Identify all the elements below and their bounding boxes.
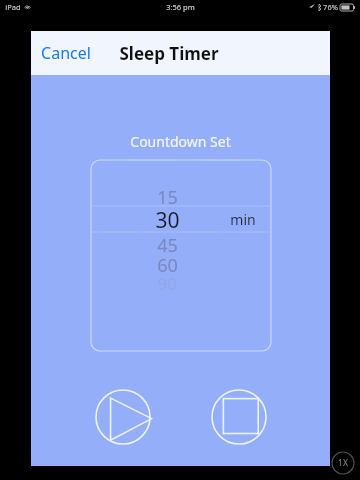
staticText: 15 xyxy=(157,185,178,210)
staticText: 1X xyxy=(338,457,348,469)
staticText: 76% xyxy=(323,2,338,12)
button[interactable]: Stop xyxy=(209,387,269,447)
staticText: iPad xyxy=(5,2,21,12)
staticText: 60 xyxy=(157,253,178,278)
staticText: 3:56 pm xyxy=(166,2,195,12)
staticText: 30 xyxy=(155,206,180,235)
button[interactable]: Play xyxy=(93,387,153,447)
button[interactable]: Cancel xyxy=(31,36,101,70)
staticText: min xyxy=(230,210,256,229)
button[interactable]: Scale 1X xyxy=(331,451,355,475)
staticText: Countdown Set xyxy=(130,132,231,151)
staticText: 45 xyxy=(157,233,178,258)
staticText: Cancel xyxy=(41,42,91,64)
staticText: 90 xyxy=(157,272,177,295)
staticText: Sleep Timer xyxy=(119,42,219,65)
